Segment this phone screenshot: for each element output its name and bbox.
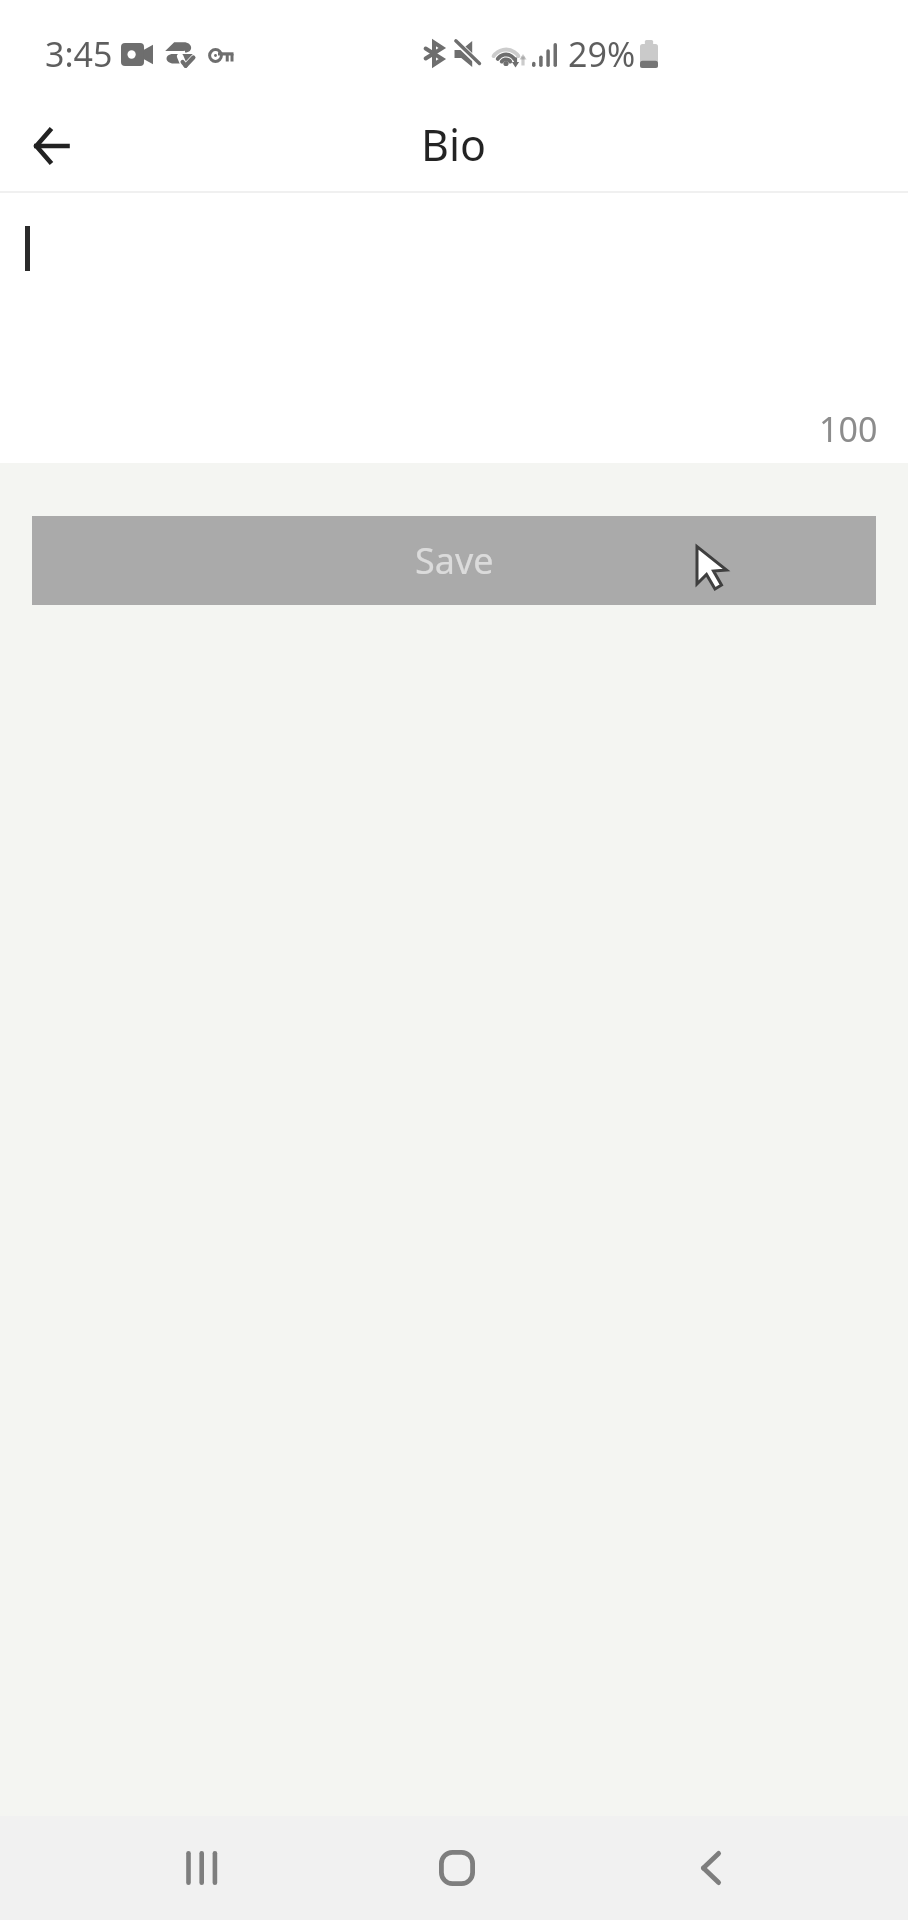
staticText: 100 [819,406,878,452]
button[interactable]: Save [32,516,876,605]
button[interactable]: Back [8,98,94,193]
button[interactable]: Back [635,1816,787,1920]
staticText: 29% [568,31,636,77]
button[interactable]: Recent apps [126,1816,278,1920]
button[interactable]: Home [381,1816,533,1920]
button[interactable]: Bio text field [0,193,908,463]
staticText: Bio [421,115,487,174]
staticText: 3:45 [45,31,113,77]
staticText: Save [415,536,494,585]
